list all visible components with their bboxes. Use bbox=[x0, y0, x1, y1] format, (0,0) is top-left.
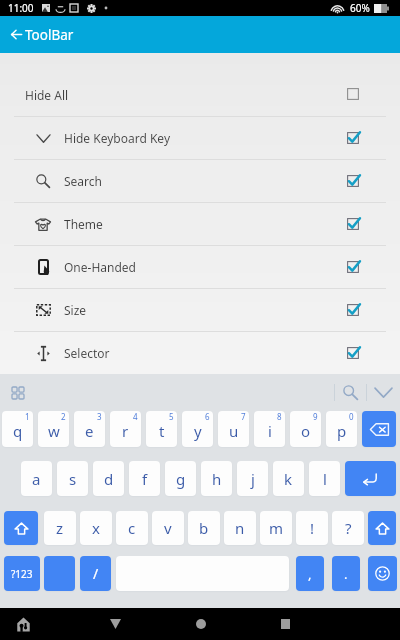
button[interactable]: Theme bbox=[0, 203, 400, 245]
staticText: Selector bbox=[64, 345, 110, 361]
button[interactable]: Recent apps bbox=[263, 608, 308, 640]
button[interactable]: z bbox=[44, 511, 76, 545]
staticText: 5 bbox=[169, 411, 174, 422]
button[interactable]: ! bbox=[296, 511, 328, 545]
staticText: Hide All bbox=[25, 87, 69, 103]
staticText: i bbox=[268, 421, 272, 441]
button[interactable]: Enter bbox=[345, 461, 396, 496]
staticText: l bbox=[323, 469, 327, 489]
staticText: ?123 bbox=[11, 567, 33, 581]
staticText: / bbox=[93, 564, 99, 583]
staticText: o bbox=[301, 421, 311, 441]
staticText: d bbox=[104, 469, 114, 489]
staticText: n bbox=[235, 518, 245, 538]
staticText: Size bbox=[64, 302, 87, 318]
button[interactable]: Hide Keyboard Key bbox=[0, 117, 400, 159]
staticText: h bbox=[212, 469, 222, 489]
button[interactable]: c bbox=[116, 511, 148, 545]
button[interactable]: m bbox=[260, 511, 292, 545]
button[interactable]: ?123 bbox=[4, 556, 40, 591]
button[interactable]: Assistant bbox=[1, 608, 46, 640]
staticText: x bbox=[92, 518, 100, 538]
staticText: , bbox=[308, 565, 312, 583]
button[interactable]: 2 bbox=[38, 411, 69, 447]
button[interactable]: Shift bbox=[4, 511, 38, 545]
staticText: r bbox=[122, 421, 129, 441]
staticText: 0 bbox=[349, 411, 354, 422]
button[interactable]: f bbox=[129, 461, 160, 496]
button[interactable]: Search bbox=[0, 160, 400, 202]
button[interactable]: Keyboard menu bbox=[6, 381, 29, 404]
button[interactable]: s bbox=[57, 461, 88, 496]
button[interactable]: Home bbox=[178, 608, 223, 640]
button[interactable]: 6 bbox=[182, 411, 213, 447]
staticText: z bbox=[56, 518, 64, 538]
button[interactable]: d bbox=[93, 461, 124, 496]
staticText: v bbox=[164, 518, 172, 538]
staticText: Theme bbox=[64, 216, 103, 232]
button[interactable]: k bbox=[273, 461, 304, 496]
button[interactable]: Backspace bbox=[362, 411, 396, 447]
button[interactable]: One-Handed bbox=[0, 246, 400, 288]
button[interactable]: n bbox=[224, 511, 256, 545]
staticText: w bbox=[48, 421, 60, 441]
button[interactable]: a bbox=[21, 461, 52, 496]
button[interactable]: 5 bbox=[146, 411, 177, 447]
staticText: g bbox=[176, 469, 186, 489]
button[interactable]: 9 bbox=[290, 411, 321, 447]
staticText: q bbox=[13, 421, 23, 441]
button[interactable]: Hide All bbox=[0, 53, 400, 116]
staticText: Search bbox=[64, 173, 102, 189]
button[interactable]: Back bbox=[93, 608, 138, 640]
button[interactable]: ? bbox=[332, 511, 364, 545]
staticText: ! bbox=[310, 518, 315, 538]
staticText: One-Handed bbox=[64, 259, 136, 275]
button[interactable]: b bbox=[188, 511, 220, 545]
button[interactable]: Back bbox=[4, 16, 28, 53]
staticText: s bbox=[69, 469, 77, 489]
button[interactable]: , bbox=[296, 556, 324, 591]
staticText: . bbox=[344, 565, 348, 583]
button[interactable]: 3 bbox=[74, 411, 105, 447]
staticText: ? bbox=[345, 518, 352, 538]
button[interactable]: j bbox=[237, 461, 268, 496]
button[interactable]: 8 bbox=[254, 411, 285, 447]
button[interactable]: . bbox=[332, 556, 360, 591]
button[interactable]: Change language bbox=[44, 556, 75, 591]
staticText: 60% bbox=[350, 1, 370, 15]
staticText: f bbox=[142, 469, 148, 489]
staticText: k bbox=[284, 469, 293, 489]
staticText: Hide Keyboard Key bbox=[64, 130, 170, 146]
staticText: 9 bbox=[313, 411, 318, 422]
staticText: m bbox=[269, 518, 284, 538]
button[interactable]: Size bbox=[0, 289, 400, 331]
staticText: a bbox=[32, 469, 41, 489]
staticText: t bbox=[159, 421, 165, 441]
button[interactable]: / bbox=[80, 556, 111, 591]
button[interactable]: l bbox=[309, 461, 340, 496]
button[interactable]: Shift bbox=[368, 511, 396, 545]
button[interactable]: Emoji bbox=[368, 556, 397, 591]
staticText: 1 bbox=[25, 411, 30, 422]
button[interactable]: Hide keyboard bbox=[367, 374, 400, 411]
button[interactable]: v bbox=[152, 511, 184, 545]
button[interactable]: 7 bbox=[218, 411, 249, 447]
staticText: p bbox=[337, 421, 347, 441]
button[interactable]: 4 bbox=[110, 411, 141, 447]
button[interactable]: g bbox=[165, 461, 196, 496]
button[interactable]: h bbox=[201, 461, 232, 496]
staticText: 6 bbox=[205, 411, 210, 422]
staticText: y bbox=[194, 421, 202, 441]
staticText: u bbox=[229, 421, 239, 441]
staticText: e bbox=[85, 421, 94, 441]
staticText: b bbox=[199, 518, 209, 538]
button[interactable]: Selector bbox=[0, 332, 400, 374]
button[interactable]: Search bbox=[335, 374, 366, 411]
staticText: 8 bbox=[277, 411, 282, 422]
button[interactable]: 0 bbox=[326, 411, 357, 447]
button[interactable]: 1 bbox=[2, 411, 33, 447]
staticText: ToolBar bbox=[25, 26, 74, 44]
button[interactable]: x bbox=[80, 511, 112, 545]
staticText: 4 bbox=[133, 411, 138, 422]
